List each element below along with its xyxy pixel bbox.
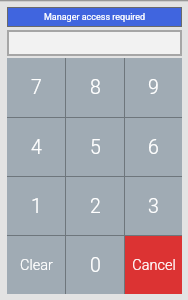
button[interactable]: PIN entry field — [7, 30, 182, 56]
staticText: 3 — [148, 195, 159, 218]
staticText: 6 — [148, 136, 159, 159]
button[interactable]: 5 — [66, 118, 124, 176]
staticText: 8 — [90, 76, 101, 99]
button[interactable]: 7 — [7, 58, 65, 117]
staticText: 9 — [148, 76, 159, 99]
staticText: 0 — [90, 254, 101, 277]
button[interactable]: 3 — [125, 177, 182, 235]
staticText: Clear — [20, 257, 53, 274]
staticText: Cancel — [132, 257, 176, 274]
button[interactable]: 2 — [66, 177, 124, 235]
staticText: 5 — [90, 136, 101, 159]
staticText: 2 — [90, 195, 101, 218]
staticText: 7 — [31, 76, 42, 99]
button[interactable]: 9 — [125, 58, 182, 117]
button[interactable]: 8 — [66, 58, 124, 117]
button[interactable]: 6 — [125, 118, 182, 176]
staticText: 4 — [31, 136, 42, 159]
button[interactable]: 4 — [7, 118, 65, 176]
button[interactable]: Cancel — [125, 236, 182, 294]
staticText: 1 — [31, 195, 42, 218]
staticText: Manager access required — [44, 12, 146, 23]
button[interactable]: 0 — [66, 236, 124, 294]
button[interactable]: Clear — [7, 236, 65, 294]
button[interactable]: 1 — [7, 177, 65, 235]
